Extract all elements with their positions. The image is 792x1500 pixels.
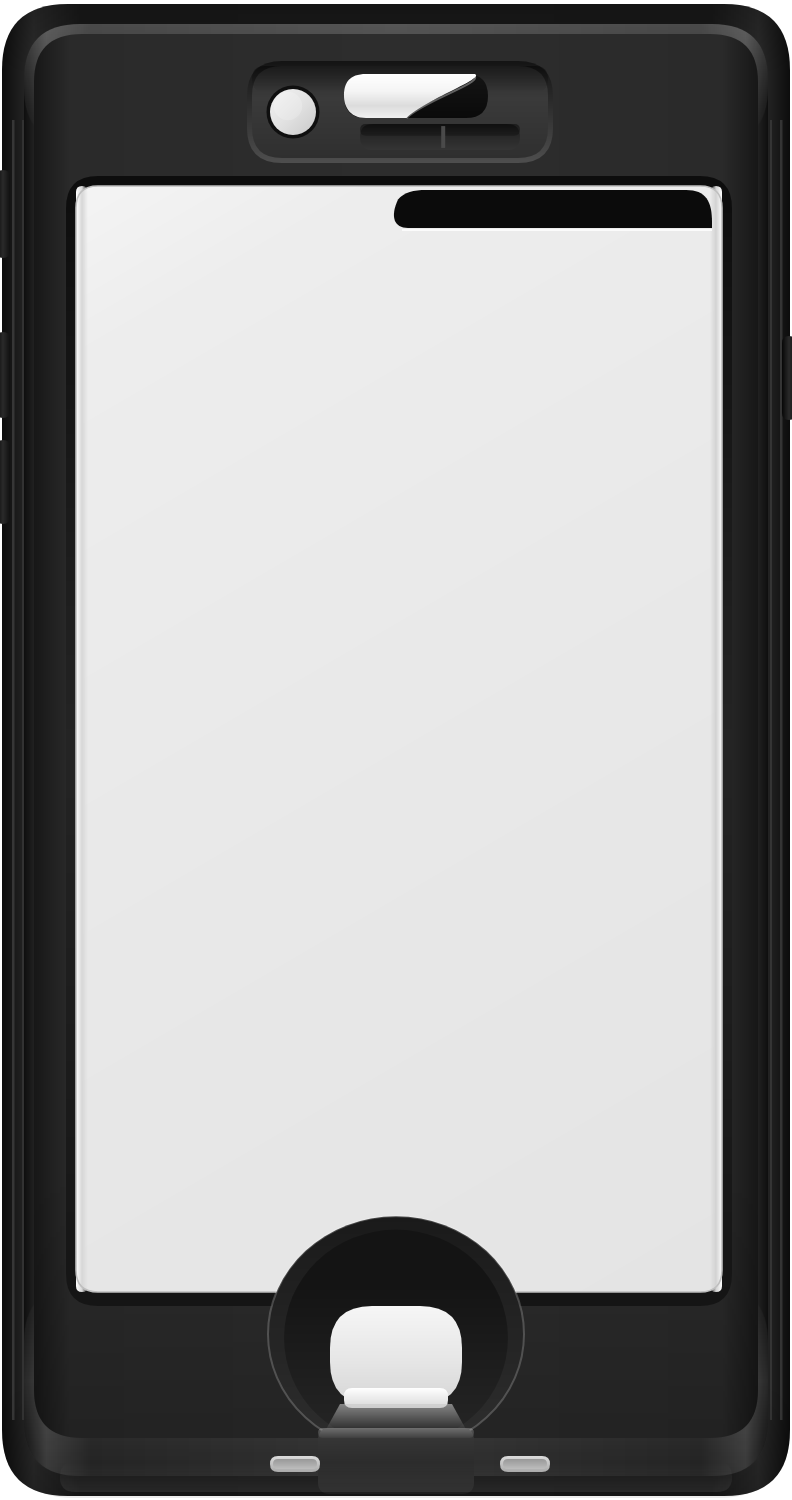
button[interactable]: Phone in rugged waterproof case [0, 0, 792, 1500]
